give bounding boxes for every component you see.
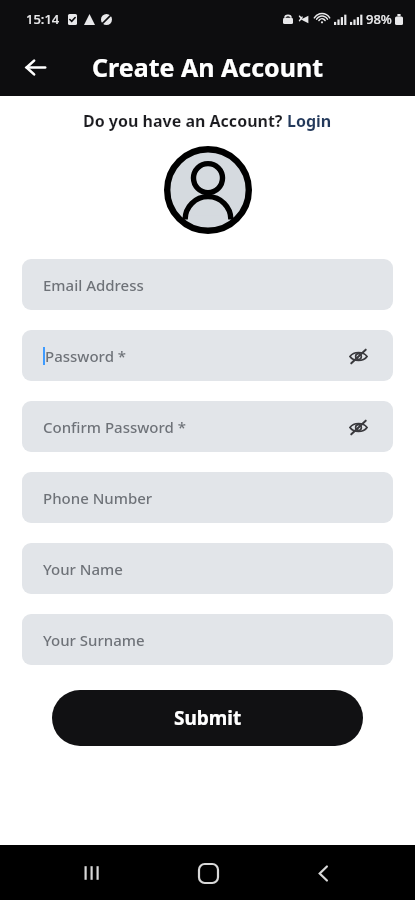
staticText: Your Name bbox=[43, 559, 123, 579]
staticText: Login bbox=[287, 110, 332, 132]
button[interactable]: Home bbox=[184, 849, 232, 897]
staticText: Do you have an Account? bbox=[83, 110, 287, 132]
staticText: Password * bbox=[45, 346, 127, 366]
button[interactable]: Recent apps bbox=[68, 849, 116, 897]
button[interactable]: Show password bbox=[343, 341, 373, 371]
button[interactable]: Confirm Password * bbox=[22, 401, 393, 452]
button[interactable]: Email Address bbox=[22, 259, 393, 310]
button[interactable]: Submit bbox=[52, 690, 363, 746]
button[interactable]: Your Surname bbox=[22, 614, 393, 665]
staticText: Your Surname bbox=[43, 630, 145, 650]
staticText: 15:14 bbox=[26, 10, 60, 28]
button[interactable]: Phone Number bbox=[22, 472, 393, 523]
button[interactable]: Back bbox=[299, 849, 347, 897]
button[interactable]: Profile photo bbox=[164, 146, 252, 234]
button[interactable]: Password * bbox=[22, 330, 393, 381]
staticText: Confirm Password * bbox=[43, 417, 186, 437]
staticText: 98% bbox=[366, 10, 392, 28]
staticText: Phone Number bbox=[43, 488, 153, 508]
staticText: Create An Account bbox=[92, 50, 324, 84]
button[interactable]: Back bbox=[14, 46, 56, 88]
staticText: Submit bbox=[174, 705, 242, 731]
button[interactable]: Your Name bbox=[22, 543, 393, 594]
button[interactable]: Show password bbox=[343, 412, 373, 442]
staticText: Email Address bbox=[43, 275, 144, 295]
button[interactable]: Login bbox=[287, 110, 332, 132]
